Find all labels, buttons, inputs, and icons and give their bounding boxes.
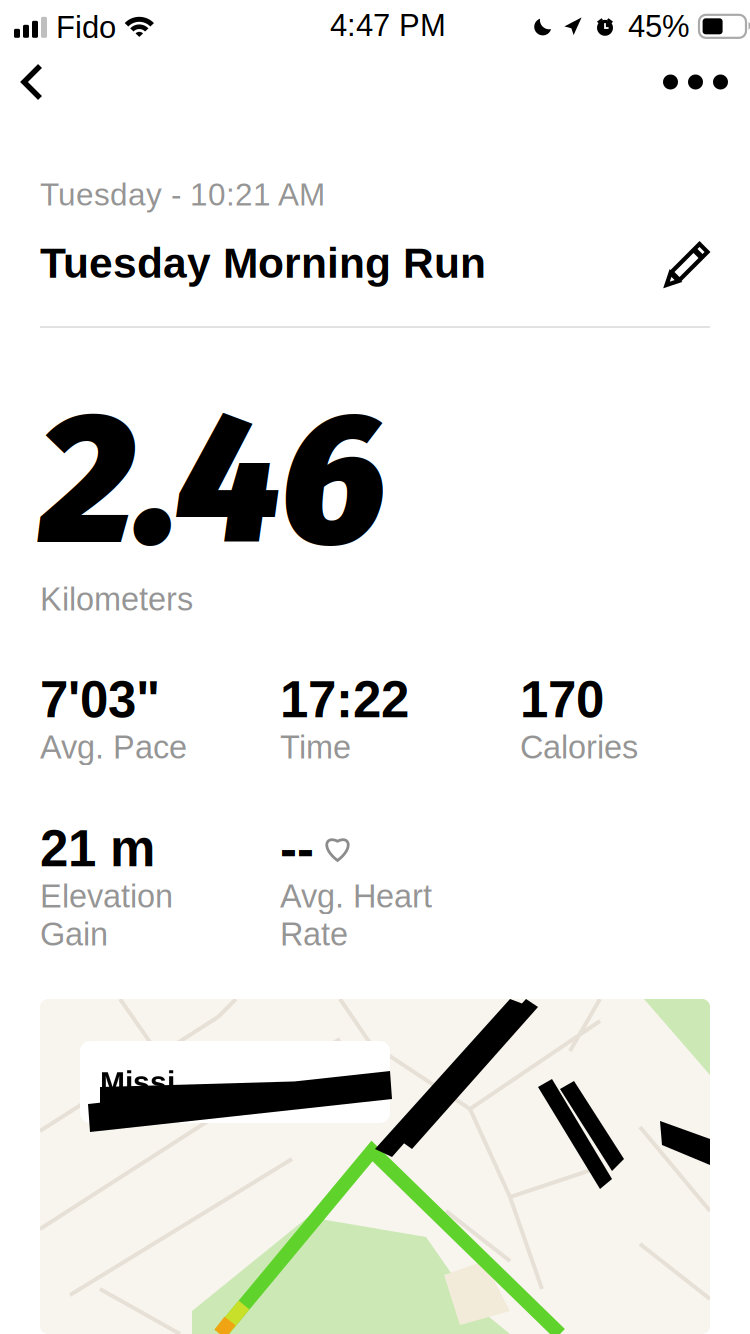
staticText: Kilometers xyxy=(40,581,193,617)
staticText: 17:22 xyxy=(280,671,409,728)
button[interactable]: Back xyxy=(0,44,68,120)
staticText: Tuesday - 10:21 AM xyxy=(40,177,325,212)
staticText: Avg. Pace xyxy=(40,729,187,765)
staticText: Time xyxy=(280,729,351,765)
staticText: Avg. Heart xyxy=(280,878,432,914)
button[interactable]: Edit title xyxy=(664,238,710,287)
staticText: Missi xyxy=(100,1065,175,1098)
staticText: Elevation xyxy=(40,878,173,914)
staticText: -- xyxy=(280,820,314,877)
staticText: 21 m xyxy=(40,820,155,877)
staticText: 2.46 xyxy=(40,371,386,591)
staticText: 170 xyxy=(520,671,604,728)
staticText: 4:47 PM xyxy=(330,8,446,43)
staticText: Rate xyxy=(280,916,348,952)
staticText: Fido xyxy=(56,10,116,45)
staticText: Calories xyxy=(520,729,638,765)
staticText: 7'03" xyxy=(40,671,160,728)
staticText: Tuesday Morning Run xyxy=(40,239,486,287)
staticText: 45% xyxy=(628,9,690,44)
staticText: Gain xyxy=(40,916,108,952)
button[interactable]: More options xyxy=(641,44,750,119)
